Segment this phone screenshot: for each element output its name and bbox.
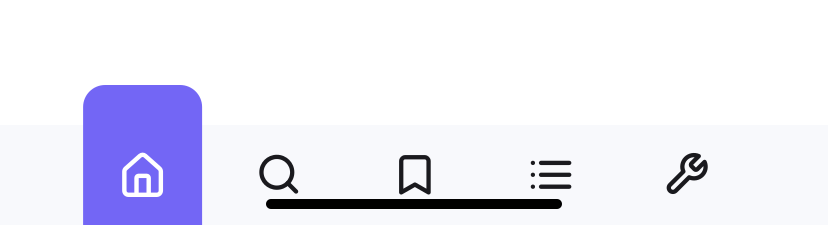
button[interactable]: Settings (619, 125, 755, 225)
button[interactable]: Activity (483, 125, 619, 225)
button[interactable]: Home (74, 125, 211, 225)
button[interactable]: Bookmarks (347, 125, 483, 225)
button[interactable]: Search (211, 125, 347, 225)
